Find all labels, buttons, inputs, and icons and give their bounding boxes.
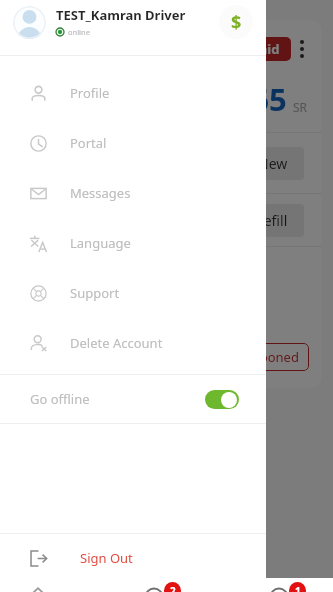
staticText: Unpaid <box>233 40 280 58</box>
button[interactable]: Wallet <box>219 5 253 39</box>
button[interactable]: Sign Out <box>0 534 266 578</box>
staticText: Profile <box>70 84 110 102</box>
staticText: Postponed <box>233 348 299 366</box>
staticText: Go offline <box>30 390 90 408</box>
staticText: New <box>258 154 288 173</box>
button[interactable]: Orders <box>132 578 176 592</box>
staticText: 1 <box>295 584 301 592</box>
staticText: Portal <box>70 134 107 152</box>
staticText: online <box>68 27 90 37</box>
staticText: Delete Account <box>70 334 163 352</box>
staticText: Refill <box>255 211 288 230</box>
staticText: Support <box>70 284 120 302</box>
button[interactable]: Support <box>0 268 266 318</box>
staticText: 1,065 <box>207 78 287 120</box>
button[interactable]: Language <box>0 218 266 268</box>
button[interactable]: New <box>242 147 304 180</box>
button[interactable]: Messages <box>0 168 266 218</box>
button[interactable]: Portal <box>0 118 266 168</box>
button[interactable]: Alerts <box>257 578 301 592</box>
button[interactable]: Go offline <box>0 375 266 423</box>
staticText: Sign Out <box>80 549 133 567</box>
staticText: 2 <box>170 584 176 592</box>
staticText: SR <box>293 99 308 115</box>
staticText: Messages <box>70 184 131 202</box>
staticText: Language <box>70 234 131 252</box>
button[interactable]: Home <box>16 578 60 592</box>
button[interactable]: Profile <box>0 68 266 118</box>
button[interactable]: More options <box>291 36 313 62</box>
button[interactable]: Unpaid <box>222 37 291 61</box>
button[interactable]: TEST_Kamran Driver <box>0 0 266 55</box>
button[interactable]: Postponed <box>223 343 309 371</box>
staticText: $ <box>231 10 242 35</box>
button[interactable]: Delete Account <box>0 318 266 368</box>
button[interactable]: Refill <box>239 204 304 237</box>
staticText: TEST_Kamran Driver <box>56 6 186 24</box>
